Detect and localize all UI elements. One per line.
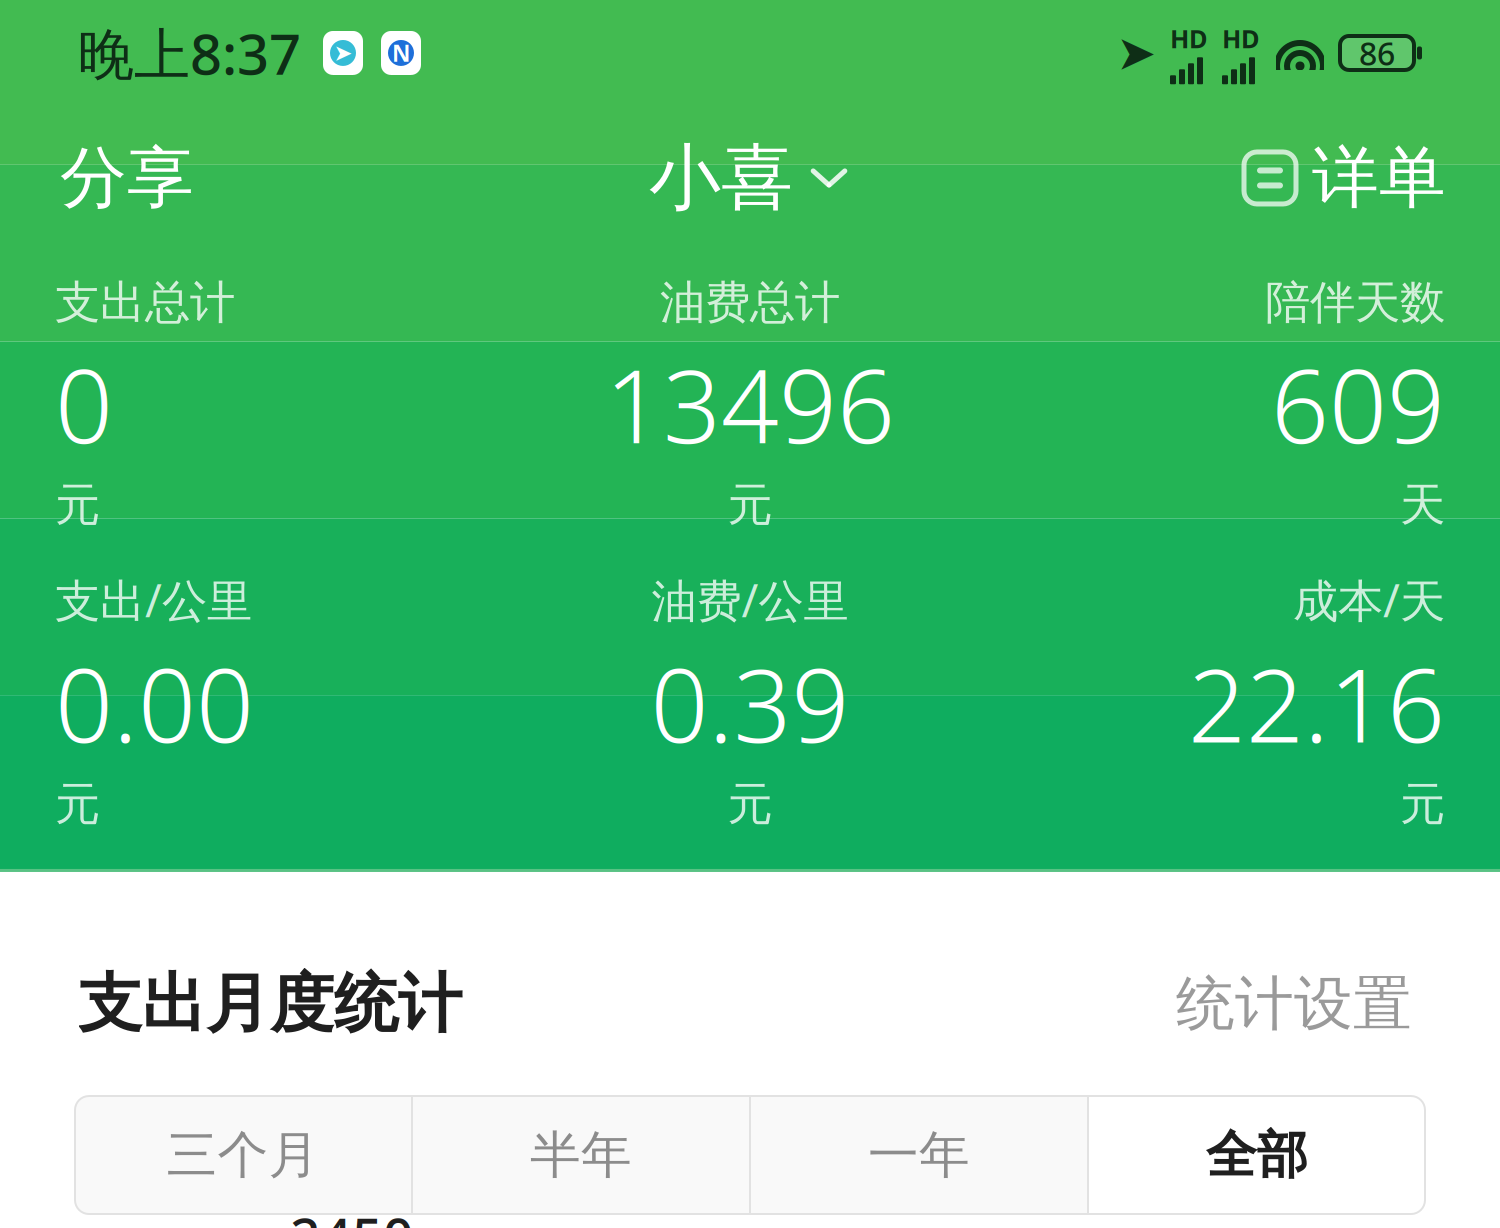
staticText: N — [392, 38, 410, 68]
staticText: ➤ — [1116, 26, 1156, 80]
staticText: 2450 — [290, 1201, 414, 1228]
staticText: 详单 — [1312, 137, 1446, 219]
staticText: 86 — [1359, 32, 1395, 74]
staticText: ➤ — [333, 40, 352, 66]
button[interactable]: 三个月 — [75, 1096, 411, 1214]
staticText: 油费/公里 — [651, 570, 848, 630]
staticText: 一年 — [868, 1124, 970, 1186]
staticText: 全部 — [1206, 1124, 1308, 1186]
button[interactable]: 详单 — [1230, 129, 1458, 227]
staticText: 0.39 — [650, 636, 849, 770]
staticText: 成本/天 — [1293, 570, 1445, 630]
staticText: 元 — [55, 776, 100, 832]
button[interactable]: 全部 — [1089, 1096, 1425, 1214]
staticText: 晚上8:37 — [78, 16, 301, 90]
staticText: 支出总计 — [55, 275, 235, 330]
button[interactable]: 一年 — [751, 1096, 1087, 1214]
staticText: 22.16 — [1188, 636, 1445, 770]
button[interactable]: 半年 — [413, 1096, 749, 1214]
staticText: 天 — [1400, 477, 1445, 533]
staticText: 油费总计 — [660, 275, 840, 330]
staticText: 陪伴天数 — [1265, 275, 1445, 330]
staticText: 0.00 — [55, 636, 254, 770]
staticText: 三个月 — [166, 1124, 319, 1186]
staticText: 0 — [55, 336, 113, 471]
staticText: HD — [1170, 22, 1208, 55]
staticText: 分享 — [60, 137, 194, 219]
staticText: 半年 — [530, 1124, 632, 1186]
staticText: 13496 — [605, 336, 895, 471]
button[interactable]: 分享 — [42, 125, 212, 231]
staticText: 统计设置 — [1176, 968, 1412, 1040]
staticText: 元 — [727, 477, 772, 533]
staticText: 609 — [1271, 336, 1445, 471]
staticText: HD — [1222, 22, 1260, 55]
button[interactable]: 统计设置 — [1166, 960, 1422, 1048]
staticText: 元 — [1400, 776, 1445, 832]
staticText: 小喜 — [649, 134, 793, 222]
staticText: 元 — [55, 477, 100, 533]
staticText: 元 — [727, 776, 772, 832]
staticText: 支出月度统计 — [78, 965, 462, 1043]
staticText: 支出/公里 — [55, 570, 252, 630]
